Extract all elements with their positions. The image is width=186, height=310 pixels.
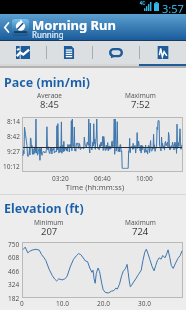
button[interactable]: Charts bbox=[139, 41, 186, 64]
staticText: 7:52 bbox=[131, 98, 150, 108]
staticText: 8:14 bbox=[7, 117, 20, 125]
staticText: 324 bbox=[8, 280, 20, 288]
staticText: 3:57 bbox=[162, 1, 184, 15]
staticText: 20.0 bbox=[97, 299, 110, 306]
staticText: 182 bbox=[8, 294, 20, 302]
staticText: 207 bbox=[41, 225, 58, 235]
staticText: 466 bbox=[8, 267, 20, 275]
staticText: 750 bbox=[8, 240, 20, 248]
staticText: 724 bbox=[132, 225, 149, 235]
staticText: 10:12 bbox=[3, 162, 20, 170]
staticText: Pace (min/mi) bbox=[4, 74, 91, 91]
staticText: 06:40 bbox=[94, 174, 111, 181]
staticText: Average bbox=[37, 91, 62, 98]
staticText: Running bbox=[32, 29, 64, 40]
staticText: 10.0 bbox=[56, 299, 69, 306]
staticText: 10:00 bbox=[136, 174, 153, 181]
staticText: 608 bbox=[8, 253, 20, 261]
staticText: 8:42 bbox=[7, 132, 20, 140]
staticText: 8:45 bbox=[40, 98, 59, 108]
staticText: Maximum bbox=[125, 218, 156, 225]
button[interactable]: Laps bbox=[92, 41, 139, 64]
staticText: 03:20 bbox=[52, 174, 69, 181]
staticText: 9:27 bbox=[7, 147, 20, 155]
staticText: Minimum bbox=[34, 218, 64, 225]
staticText: Time (hh:mm:ss) bbox=[2, 182, 186, 192]
button[interactable]: Back bbox=[0, 14, 12, 40]
button[interactable]: Map bbox=[0, 41, 46, 64]
staticText: Morning Run bbox=[32, 16, 117, 34]
staticText: 0 bbox=[20, 299, 24, 306]
staticText: Elevation (ft) bbox=[4, 200, 84, 217]
staticText: Maximum bbox=[125, 91, 156, 98]
staticText: 30.0 bbox=[138, 299, 151, 306]
button[interactable]: Details bbox=[46, 41, 92, 64]
